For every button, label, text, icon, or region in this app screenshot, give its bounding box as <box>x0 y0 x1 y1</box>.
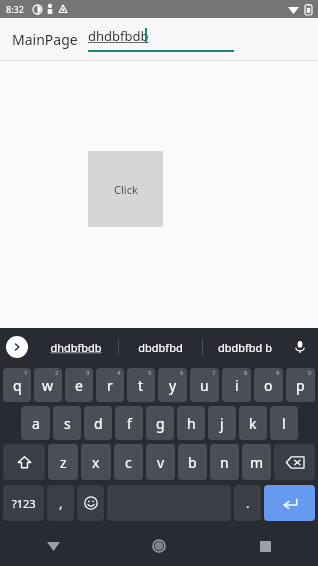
staticText: n <box>220 453 229 472</box>
staticText: dbdbfbd b <box>218 340 272 355</box>
staticText: 5 <box>148 369 152 377</box>
button[interactable]: Voice input <box>290 337 310 357</box>
button[interactable]: g <box>146 406 174 440</box>
button[interactable]: Backspace <box>274 444 315 480</box>
staticText: e <box>75 376 83 395</box>
staticText: f <box>127 414 132 433</box>
staticText: d <box>94 414 103 433</box>
staticText: dhdbfbdb <box>88 27 149 45</box>
staticText: 1 <box>24 369 28 377</box>
staticText: MainPage <box>12 30 78 49</box>
staticText: g <box>156 414 165 433</box>
button[interactable]: Home <box>106 526 212 566</box>
staticText: z <box>60 453 67 472</box>
staticText: v <box>157 453 165 472</box>
button[interactable]: l <box>270 406 298 440</box>
staticText: l <box>282 414 286 433</box>
staticText: t <box>138 376 144 395</box>
button[interactable]: Enter <box>264 485 315 521</box>
button[interactable]: d <box>84 406 112 440</box>
staticText: r <box>107 376 113 395</box>
button[interactable]: s <box>53 406 81 440</box>
button[interactable]: w <box>34 368 62 402</box>
button[interactable]: Click <box>88 151 163 227</box>
staticText: m <box>250 453 264 472</box>
staticText: h <box>187 414 196 433</box>
staticText: k <box>249 414 257 433</box>
button[interactable]: Expand suggestions <box>6 336 28 358</box>
button[interactable]: e <box>65 368 93 402</box>
button[interactable]: , <box>47 485 74 521</box>
button[interactable]: a <box>21 406 50 440</box>
button[interactable]: x <box>81 444 111 480</box>
button[interactable]: Back <box>0 526 106 566</box>
staticText: ?123 <box>12 496 36 511</box>
staticText: p <box>296 376 305 395</box>
staticText: i <box>235 376 239 395</box>
staticText: 3 <box>86 369 90 377</box>
staticText: 8 <box>244 369 248 377</box>
staticText: , <box>59 494 63 512</box>
button[interactable]: dbdbfbd <box>119 340 202 355</box>
button[interactable]: Shift <box>3 444 45 480</box>
button[interactable]: dbdbfbd b <box>203 340 286 355</box>
staticText: x <box>92 453 100 472</box>
button[interactable]: u <box>190 368 219 402</box>
button[interactable]: v <box>146 444 175 480</box>
button[interactable]: o <box>254 368 283 402</box>
staticText: o <box>264 376 273 395</box>
button[interactable]: f <box>115 406 143 440</box>
staticText: dbdbfbd <box>138 340 183 355</box>
button[interactable]: y <box>158 368 187 402</box>
staticText: u <box>200 376 209 395</box>
button[interactable]: . <box>234 485 261 521</box>
staticText: s <box>64 414 71 433</box>
button[interactable]: Emoji <box>77 485 104 521</box>
button[interactable]: ?123 <box>3 485 44 521</box>
button[interactable]: p <box>286 368 315 402</box>
staticText: 4 <box>117 369 121 377</box>
button[interactable]: k <box>239 406 267 440</box>
button[interactable]: b <box>178 444 207 480</box>
staticText: 2 <box>55 369 59 377</box>
button[interactable]: t <box>127 368 155 402</box>
button[interactable]: dhdbfbdb <box>34 340 118 355</box>
button[interactable]: Recents <box>212 526 318 566</box>
staticText: w <box>42 376 54 395</box>
staticText: a <box>32 414 40 433</box>
button[interactable]: h <box>177 406 205 440</box>
button[interactable]: r <box>96 368 124 402</box>
button[interactable]: q <box>3 368 31 402</box>
button[interactable]: z <box>48 444 78 480</box>
staticText: 7 <box>212 369 216 377</box>
staticText: c <box>125 453 132 472</box>
staticText: 8:32 <box>6 3 24 15</box>
staticText: 9 <box>276 369 280 377</box>
staticText: 6 <box>180 369 184 377</box>
staticText: q <box>13 376 22 395</box>
button[interactable]: i <box>222 368 251 402</box>
staticText: . <box>246 494 250 512</box>
button[interactable]: m <box>242 444 271 480</box>
button[interactable]: j <box>208 406 236 440</box>
button[interactable]: n <box>210 444 239 480</box>
staticText: b <box>188 453 197 472</box>
staticText: 0 <box>308 369 312 377</box>
button[interactable]: c <box>114 444 143 480</box>
staticText: y <box>169 376 177 395</box>
staticText: Click <box>114 182 138 197</box>
staticText: j <box>220 414 224 433</box>
staticText: dhdbfbdb <box>50 340 102 355</box>
